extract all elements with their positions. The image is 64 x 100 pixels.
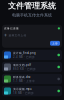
staticText: 电脑手机互传文件系统 — [12, 13, 52, 18]
staticText: 演示视频.mp4 — [13, 87, 32, 91]
staticText: 860 KB · 已同步 — [13, 67, 36, 71]
button[interactable]: 上传 — [50, 41, 60, 46]
button[interactable]: 项目文档.pdf — [2, 62, 62, 72]
staticText: + — [4, 32, 7, 39]
staticText: 1.1 MB · 上传中 — [13, 79, 35, 83]
staticText: 18 MB · 已同步 — [13, 91, 34, 95]
staticText: 设备已连接 — [4, 27, 19, 30]
staticText: 文件管理系统 — [8, 1, 56, 11]
button[interactable]: 设计稿_final.png — [2, 50, 62, 60]
staticText: 选择文件上传 — [8, 34, 26, 37]
staticText: 设计稿_final.png — [13, 51, 36, 55]
staticText: 上传 — [52, 42, 58, 45]
staticText: 项目文档.pdf — [13, 63, 31, 67]
staticText: 2.4 MB · 已同步 — [13, 55, 35, 59]
staticText: 财务报表.xlsx — [13, 75, 30, 79]
button[interactable]: 演示视频.mp4 — [2, 86, 62, 96]
button[interactable]: 财务报表.xlsx — [2, 74, 62, 84]
